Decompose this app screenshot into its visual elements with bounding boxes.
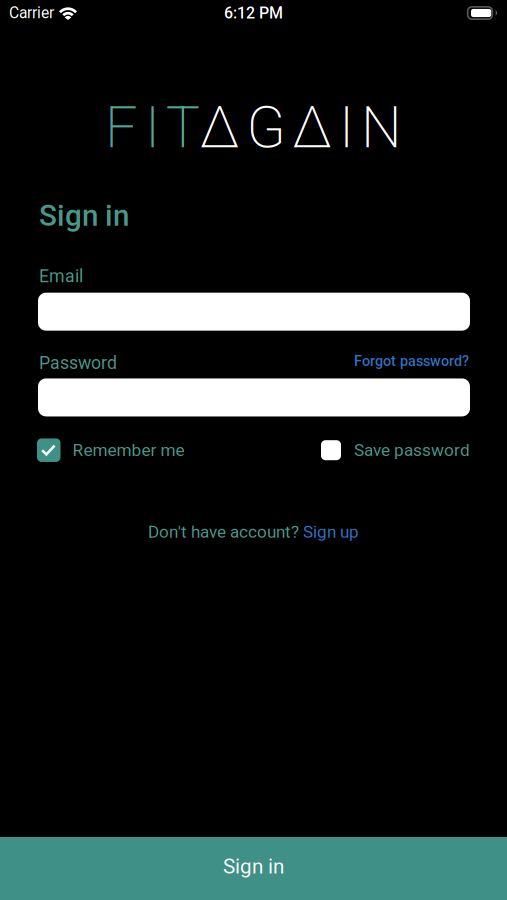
button[interactable]: Remember me [37, 438, 184, 462]
staticText: Password [39, 353, 117, 373]
button[interactable]: Save password [321, 440, 470, 460]
staticText: Sign in [223, 854, 284, 879]
staticText: Email [39, 266, 83, 287]
staticText: Save password [354, 440, 470, 460]
staticText: Sign up [303, 522, 359, 542]
button[interactable]: Forgot password? [354, 353, 469, 370]
button[interactable]: Email [38, 293, 470, 331]
staticText: Don't have account? [148, 522, 303, 542]
staticText: Sign in [39, 198, 129, 233]
staticText: FIT [105, 94, 200, 161]
staticText: Forgot password? [354, 353, 469, 370]
button[interactable]: Password [38, 378, 470, 416]
button[interactable]: Sign in [0, 837, 507, 900]
staticText: ΔGΔIN [200, 94, 402, 161]
staticText: Carrier [9, 4, 54, 22]
button[interactable]: Don't have account? [148, 522, 359, 542]
staticText: Remember me [72, 440, 184, 460]
staticText: 6:12 PM [224, 4, 283, 22]
